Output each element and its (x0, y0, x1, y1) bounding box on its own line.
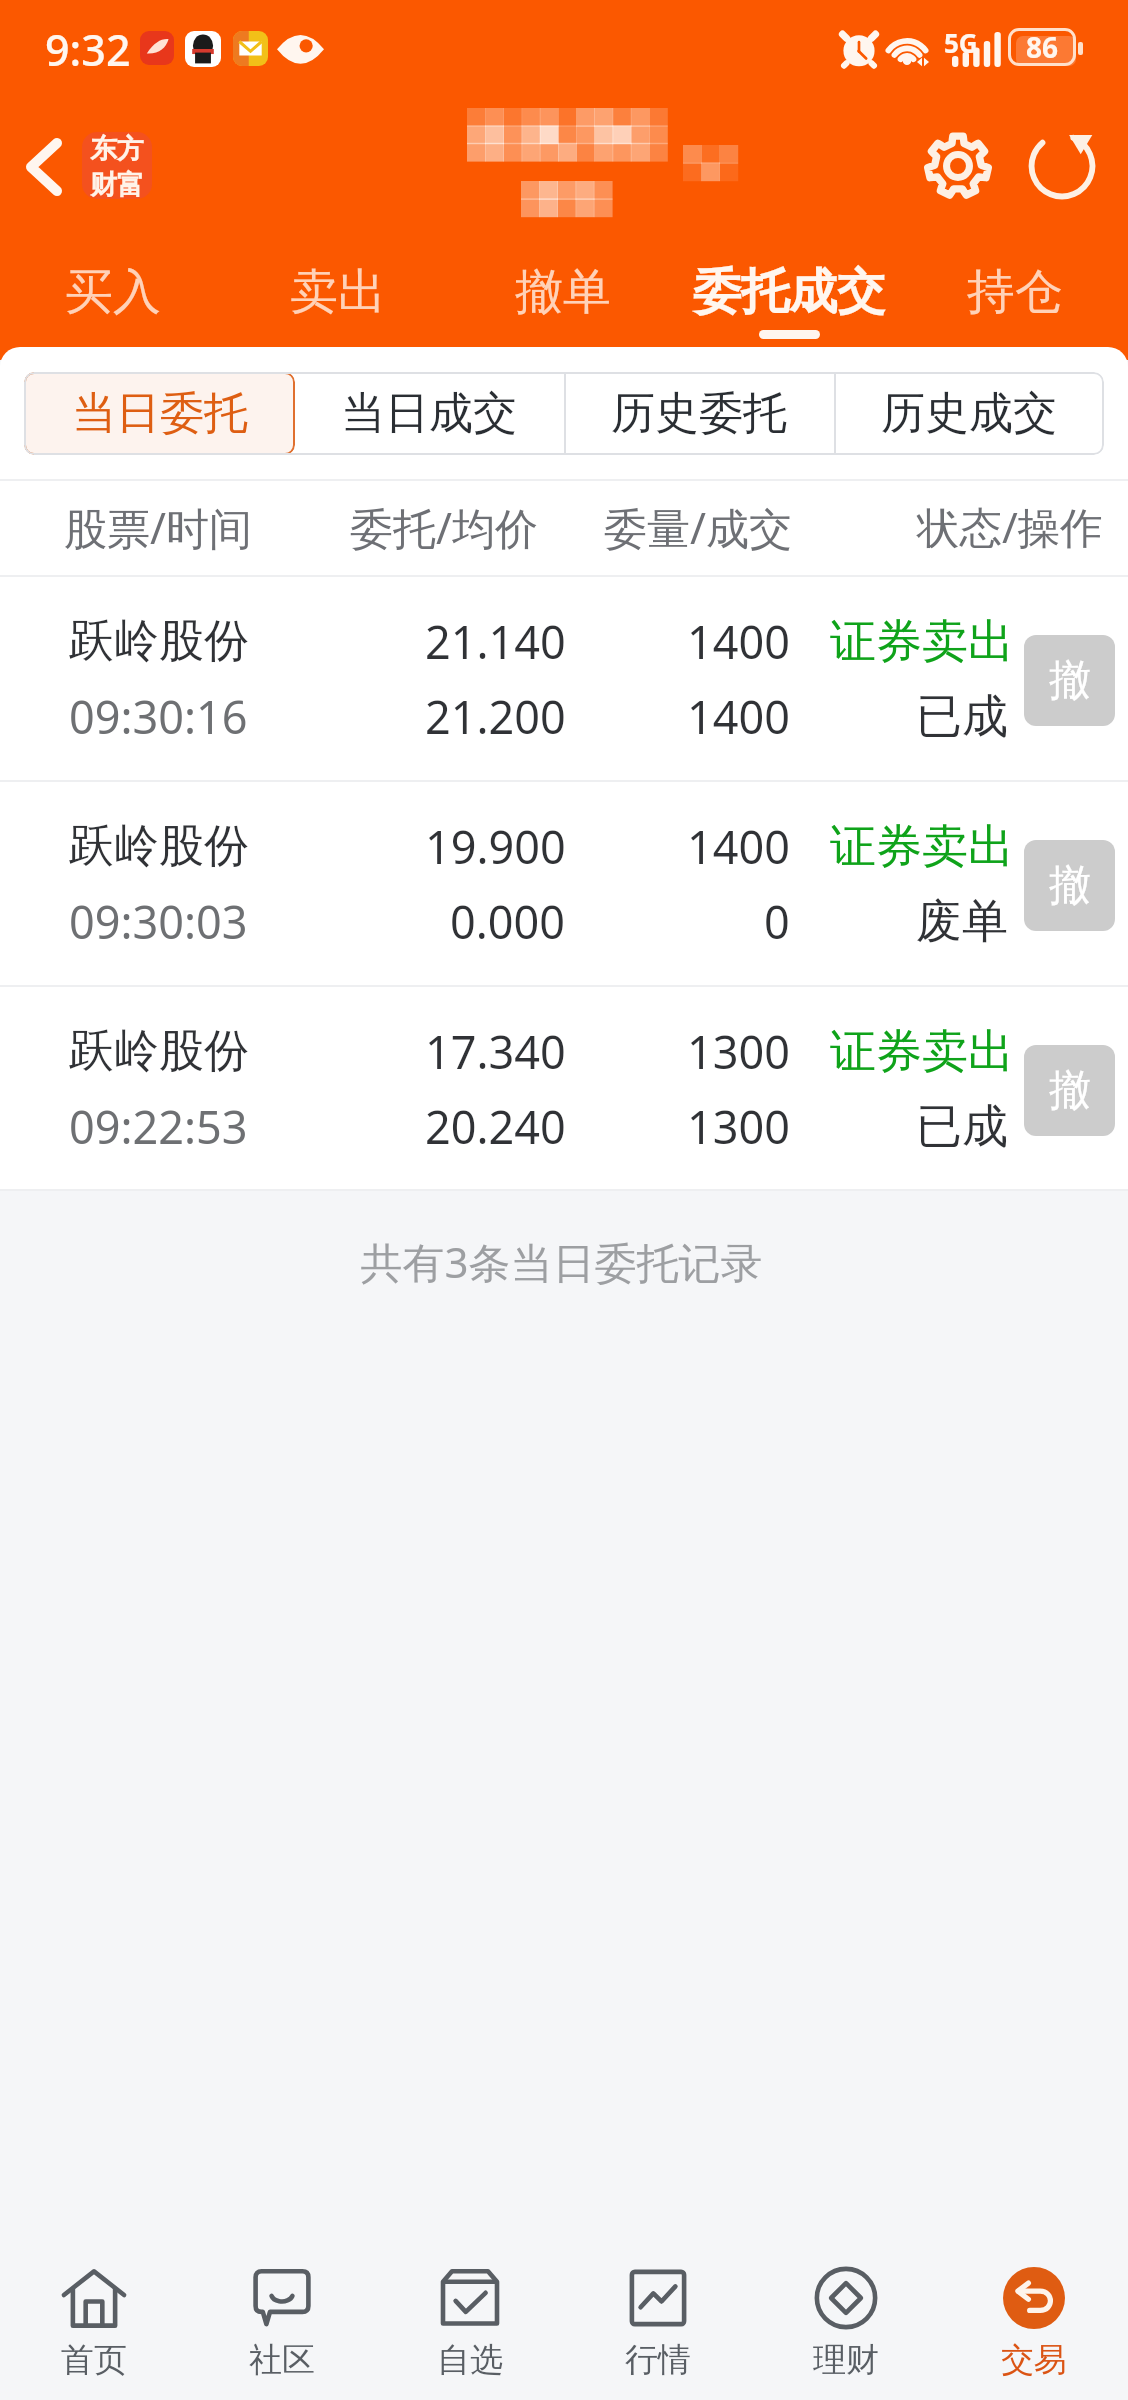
staticText: 跃岭股份 (69, 1023, 249, 1080)
staticText: 21.140 (425, 611, 566, 672)
staticText: 1400 (687, 686, 790, 747)
button[interactable]: Settings (912, 120, 1004, 212)
staticText: 东方 (90, 132, 144, 166)
button[interactable]: 撤 (1024, 635, 1115, 726)
staticText: 17.340 (425, 1021, 566, 1082)
button[interactable]: 当日委托 (24, 372, 294, 455)
staticText: 9:32 (45, 20, 131, 79)
button[interactable]: 历史委托 (564, 372, 834, 455)
staticText: 交易 (1001, 2339, 1067, 2381)
button[interactable]: 社区 (188, 2200, 376, 2400)
button[interactable]: 行情 (564, 2200, 752, 2400)
staticText: 撤单 (515, 262, 611, 322)
staticText: 撤 (1049, 859, 1091, 912)
staticText: 1400 (687, 816, 790, 877)
button[interactable]: 撤 (1024, 840, 1115, 931)
button[interactable]: 买入 (0, 248, 225, 348)
button[interactable]: 首页 (0, 2200, 188, 2400)
staticText: 理财 (813, 2339, 879, 2381)
staticText: 财富 (90, 168, 144, 199)
staticText: 09:30:16 (69, 686, 248, 747)
button[interactable]: East Money (82, 132, 152, 199)
staticText: 持仓 (967, 262, 1063, 322)
staticText: 历史委托 (611, 386, 787, 441)
staticText: 历史成交 (881, 386, 1057, 441)
button[interactable]: 跃岭股份 (0, 986, 1128, 1189)
staticText: 0 (764, 891, 790, 952)
staticText: 撤 (1049, 654, 1091, 707)
button[interactable]: 撤 (1024, 1045, 1115, 1136)
staticText: 已成 (916, 1098, 1008, 1156)
staticText: 废单 (916, 893, 1008, 951)
button[interactable]: 当日成交 (294, 372, 564, 455)
staticText: 09:30:03 (69, 891, 248, 952)
button[interactable]: 持仓 (902, 248, 1128, 348)
button[interactable]: 自选 (376, 2200, 564, 2400)
staticText: 行情 (625, 2339, 691, 2381)
staticText: 当日委托 (71, 386, 247, 441)
staticText: 5G (944, 25, 978, 60)
staticText: 状态/操作 (917, 498, 1103, 556)
staticText: 09:22:53 (69, 1096, 248, 1157)
button[interactable]: 撤单 (450, 248, 676, 348)
staticText: 证券卖出 (830, 613, 1014, 671)
staticText: 跃岭股份 (69, 818, 249, 875)
button[interactable]: Back (0, 112, 88, 222)
button[interactable]: 卖出 (225, 248, 450, 348)
button[interactable]: 交易 (940, 2200, 1128, 2400)
staticText: 股票/时间 (64, 498, 252, 557)
staticText: 当日委托 (72, 386, 248, 441)
button[interactable]: 当日委托 (24, 372, 295, 455)
staticText: 自选 (437, 2339, 503, 2381)
staticText: 撤 (1049, 1064, 1091, 1117)
staticText: 社区 (249, 2339, 315, 2381)
staticText: 20.240 (425, 1096, 566, 1157)
button[interactable]: 跃岭股份 (0, 576, 1128, 779)
staticText: 86 (1026, 28, 1059, 66)
staticText: 1300 (687, 1096, 790, 1157)
button[interactable]: 理财 (752, 2200, 940, 2400)
staticText: 证券卖出 (830, 1023, 1014, 1081)
button[interactable]: 跃岭股份 (0, 781, 1128, 984)
staticText: 19.900 (425, 816, 566, 877)
staticText: 跃岭股份 (69, 613, 249, 670)
staticText: 21.200 (425, 686, 566, 747)
staticText: 当日成交 (341, 386, 517, 441)
staticText: 卖出 (290, 262, 386, 322)
staticText: 共有3条当日委托记录 (360, 1233, 763, 1290)
staticText: 0.000 (450, 891, 566, 952)
staticText: 已成 (916, 688, 1008, 746)
button[interactable]: 委托成交 (676, 248, 902, 348)
staticText: 委量/成交 (604, 498, 792, 557)
staticText: 1300 (687, 1021, 790, 1082)
staticText: 委托/均价 (350, 498, 538, 557)
staticText: 首页 (61, 2339, 127, 2381)
staticText: 委托成交 (693, 262, 885, 322)
staticText: 证券卖出 (830, 818, 1014, 876)
button[interactable]: 历史成交 (834, 372, 1104, 455)
button[interactable]: Refresh (1016, 120, 1108, 212)
staticText: 1400 (687, 611, 790, 672)
staticText: 买入 (65, 262, 161, 322)
